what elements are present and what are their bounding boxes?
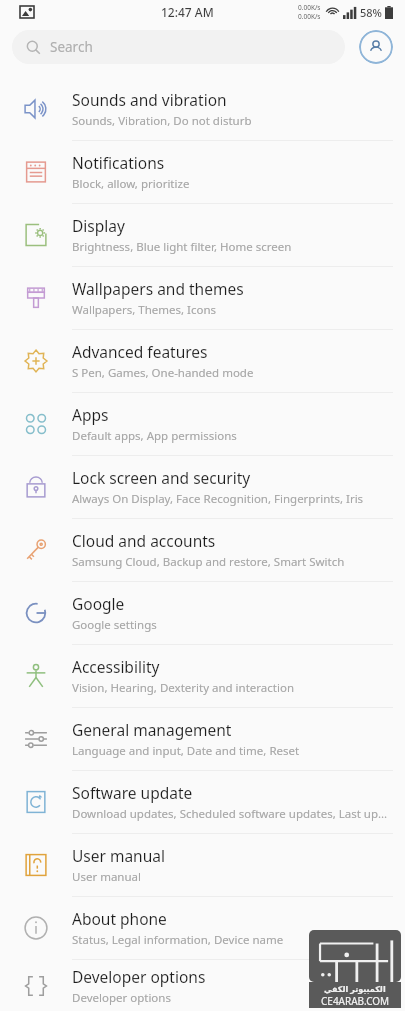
button[interactable]: Wallpapers and themes [0,267,405,329]
staticText: 0.00K/s [298,3,321,12]
staticText: Download updates, Scheduled software upd… [72,806,393,822]
staticText: 0.00K/s [298,12,321,21]
staticText: About phone [72,908,167,929]
button[interactable]: Cloud and accounts [0,519,405,581]
staticText: Status, Legal information, Device name [72,932,284,948]
button[interactable]: General management [0,708,405,770]
staticText: Samsung Cloud, Backup and restore, Smart… [72,554,345,570]
staticText: General management [72,719,232,740]
staticText: 12:47 AM [161,4,214,20]
staticText: Google [72,593,125,614]
staticText: Sounds, Vibration, Do not disturb [72,113,252,129]
staticText: Sounds and vibration [72,89,227,110]
staticText: الكمبيوتر الكفي [324,983,386,994]
staticText: Notifications [72,152,165,173]
button[interactable]: Google [0,582,405,644]
button[interactable]: Software update [0,771,405,833]
staticText: Wallpapers and themes [72,278,244,299]
staticText: Brightness, Blue light filter, Home scre… [72,239,292,255]
staticText: Apps [72,404,109,425]
staticText: Always On Display, Face Recognition, Fin… [72,491,364,507]
staticText: Default apps, App permissions [72,428,237,444]
button[interactable]: Advanced features [0,330,405,392]
staticText: Advanced features [72,341,208,362]
staticText: 58% [360,5,382,20]
button[interactable]: About phone [0,897,405,959]
button[interactable]: Developer options [0,960,405,1011]
staticText: Display [72,215,125,236]
staticText: Cloud and accounts [72,530,216,551]
button[interactable]: Search [12,30,345,64]
button[interactable]: Apps [0,393,405,455]
button[interactable]: User manual [0,834,405,896]
staticText: Vision, Hearing, Dexterity and interacti… [72,680,295,696]
staticText: Wallpapers, Themes, Icons [72,302,217,318]
staticText: User manual [72,845,165,866]
staticText: CE4ARAB.COM [321,994,390,1008]
staticText: Search [50,38,93,56]
staticText: Google settings [72,617,157,633]
button[interactable]: Accessibility [0,645,405,707]
button[interactable]: Display [0,204,405,266]
staticText: User manual [72,869,141,885]
staticText: S Pen, Games, One-handed mode [72,365,254,381]
staticText: Developer options [72,966,206,987]
staticText: Developer options [72,990,171,1006]
button[interactable]: Lock screen and security [0,456,405,518]
staticText: Lock screen and security [72,467,251,488]
staticText: Block, allow, prioritize [72,176,190,192]
staticText: Language and input, Date and time, Reset [72,743,300,759]
staticText: Accessibility [72,656,160,677]
staticText: Software update [72,782,193,803]
button[interactable]: Sounds and vibration [0,78,405,140]
button[interactable]: Account [359,30,393,64]
button[interactable]: Notifications [0,141,405,203]
